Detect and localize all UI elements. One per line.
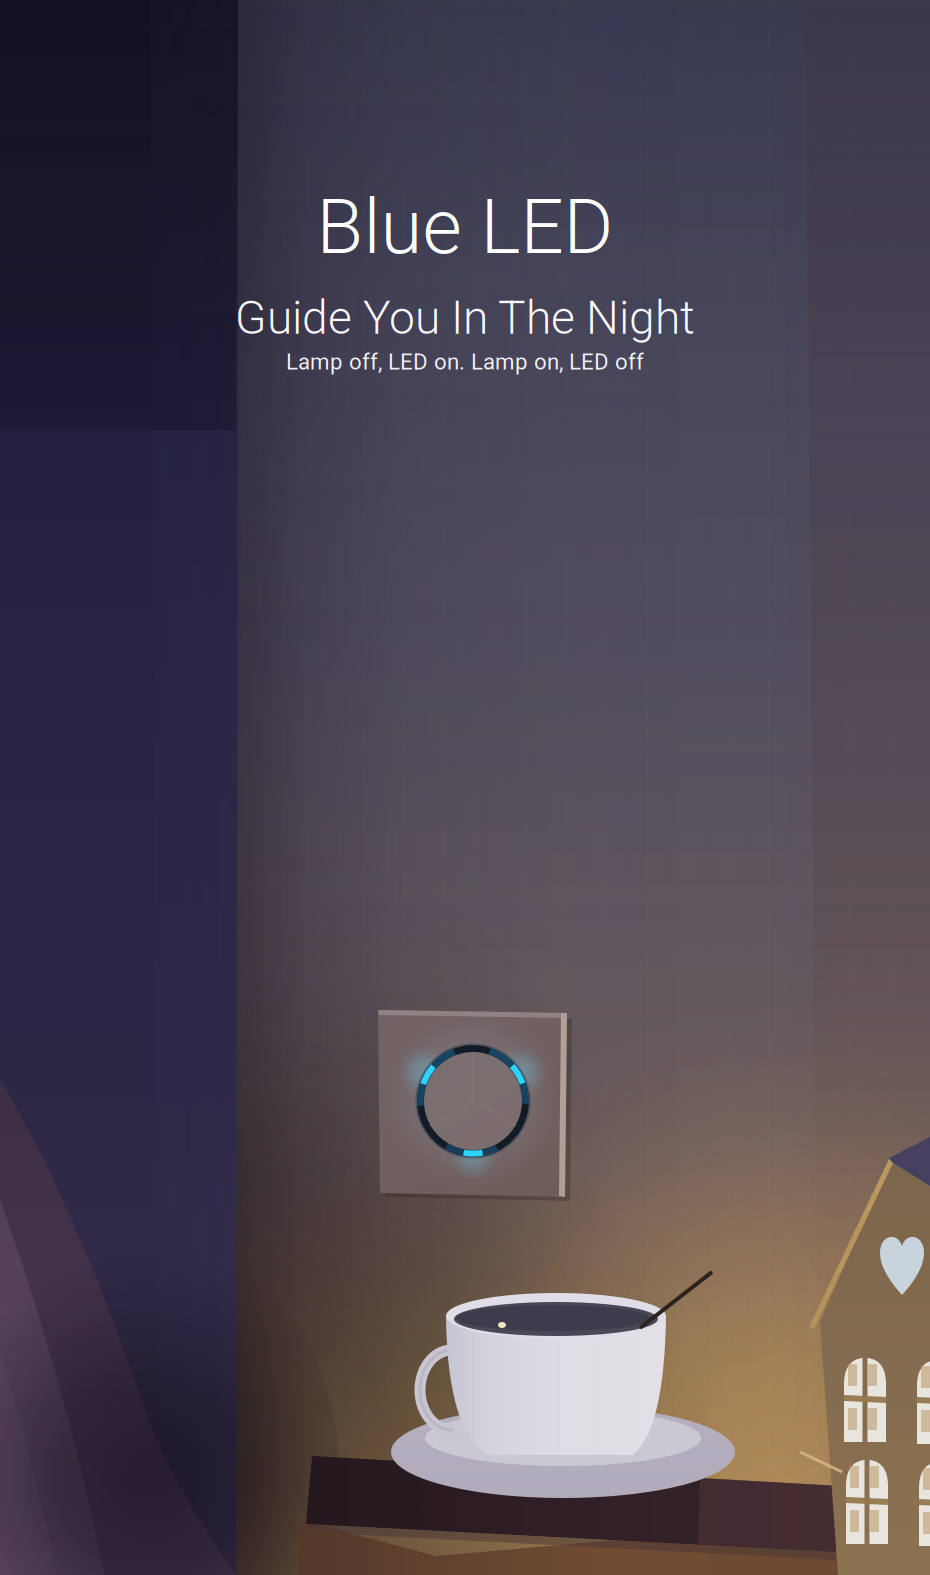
staticText: Blue LED [316, 182, 613, 272]
staticText: Lamp off, LED on. Lamp on, LED off [286, 349, 644, 375]
staticText: Guide You In The Night [235, 291, 695, 345]
